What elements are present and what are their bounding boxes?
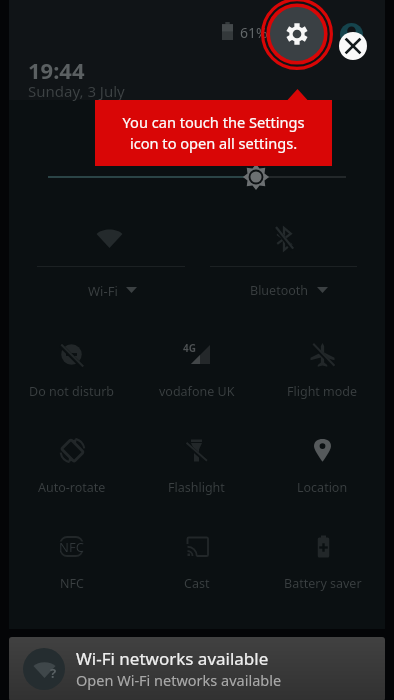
staticText: Cast xyxy=(184,575,210,592)
staticText: ? xyxy=(50,664,57,682)
button[interactable]: Location xyxy=(260,407,385,503)
button[interactable]: ? xyxy=(9,637,385,700)
button[interactable]: Auto-rotate xyxy=(9,407,134,503)
staticText: vodafone UK xyxy=(159,383,235,400)
staticText: Location xyxy=(297,479,348,496)
staticText: You can touch the Settings icon to open … xyxy=(95,112,332,154)
button[interactable]: Flight mode xyxy=(260,311,385,407)
staticText: 61% xyxy=(240,23,268,42)
staticText: Auto-rotate xyxy=(38,479,106,496)
button[interactable]: Cast xyxy=(134,503,259,599)
staticText: Wi-Fi xyxy=(88,282,118,298)
staticText: 4G xyxy=(183,341,196,355)
staticText: Flight mode xyxy=(287,383,358,400)
staticText: Wi-Fi networks available xyxy=(76,647,269,670)
button[interactable]: 4G xyxy=(134,311,259,407)
button[interactable]: Bluetooth xyxy=(250,282,328,298)
button[interactable]: Do not disturb xyxy=(9,311,134,407)
button[interactable]: Flashlight xyxy=(134,407,259,503)
staticText: 19:44 xyxy=(28,55,85,85)
button[interactable]: Battery saver xyxy=(260,503,385,599)
staticText: Do not disturb xyxy=(29,383,114,400)
staticText: Battery saver xyxy=(284,575,362,592)
staticText: NFC xyxy=(60,575,84,592)
staticText: Open Wi-Fi networks available xyxy=(76,670,282,690)
staticText: NFC xyxy=(59,538,84,556)
staticText: Flashlight xyxy=(168,479,225,496)
button[interactable]: NFC xyxy=(9,503,134,599)
button[interactable]: Close xyxy=(339,32,367,60)
button[interactable]: Settings xyxy=(261,0,333,70)
staticText: Sunday, 3 July xyxy=(28,81,125,101)
button[interactable]: Wi-Fi xyxy=(88,282,137,298)
staticText: Bluetooth xyxy=(250,282,309,298)
